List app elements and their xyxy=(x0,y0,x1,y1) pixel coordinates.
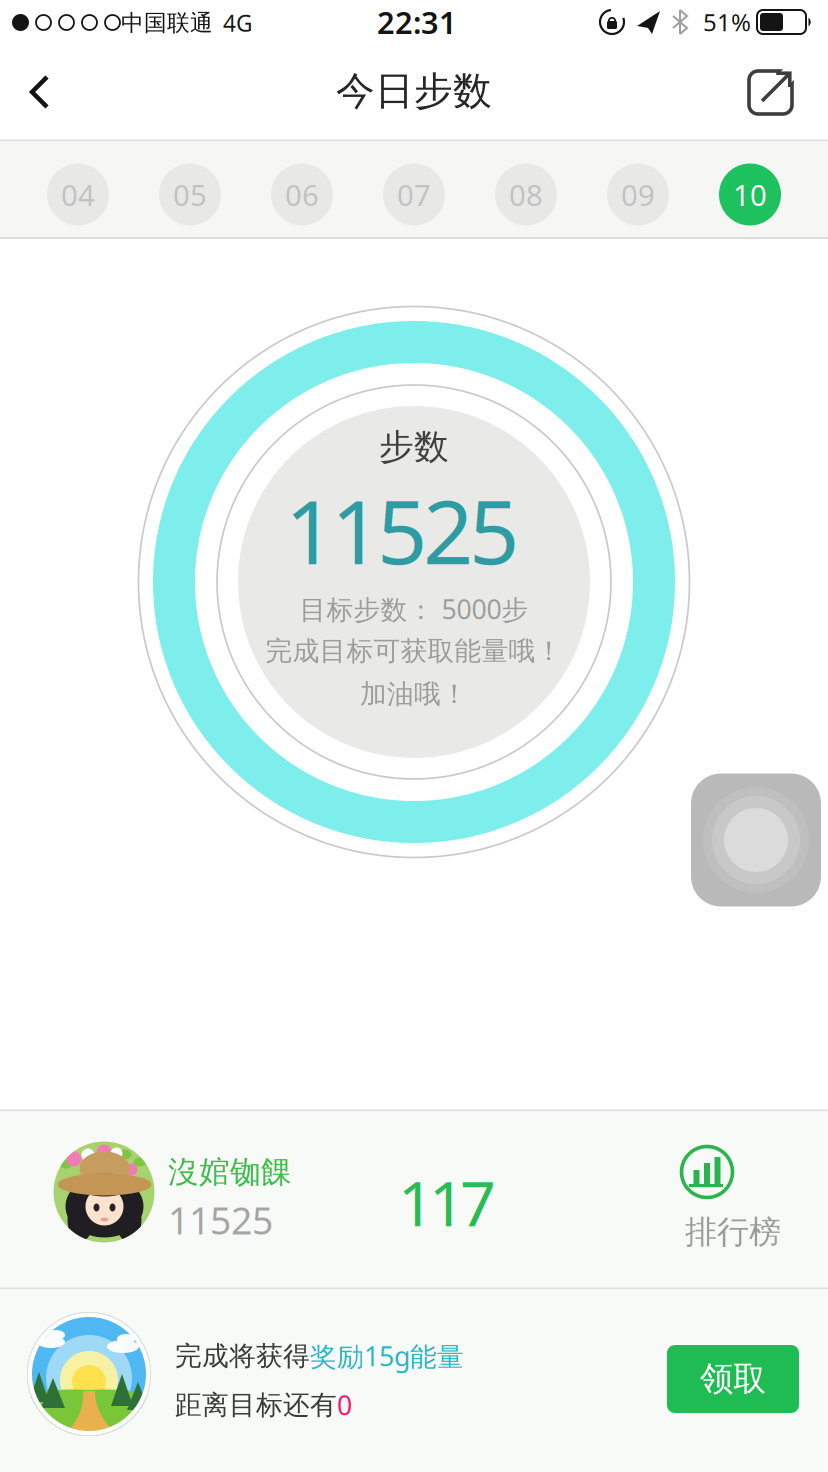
button[interactable]: 08 xyxy=(495,163,557,225)
staticText: 沒婠铷餜 xyxy=(168,1153,292,1191)
button[interactable]: Share xyxy=(741,63,799,121)
button[interactable]: AssistiveTouch xyxy=(691,773,821,906)
button[interactable]: 排行榜 xyxy=(673,1140,793,1252)
staticText: 领取 xyxy=(700,1358,766,1399)
staticText: 目标步数： 5000步 xyxy=(299,591,528,627)
button[interactable]: 04 xyxy=(47,163,109,225)
staticText: 0 xyxy=(337,1387,352,1423)
staticText: 排行榜 xyxy=(685,1212,781,1252)
button[interactable]: Back xyxy=(17,69,63,115)
staticText: 中国联通 xyxy=(121,9,213,37)
staticText: 11525 xyxy=(285,472,519,588)
staticText: 08 xyxy=(509,175,543,214)
staticText: 04 xyxy=(61,175,95,214)
staticText: 117 xyxy=(398,1160,496,1244)
button[interactable]: 10 xyxy=(719,163,781,225)
staticText: 距离目标还有 xyxy=(175,1389,337,1421)
staticText: 加油哦！ xyxy=(360,678,468,710)
staticText: 51% xyxy=(703,6,751,38)
button[interactable]: 领取 xyxy=(667,1345,799,1413)
button[interactable]: 09 xyxy=(607,163,669,225)
staticText: 4G xyxy=(223,8,253,38)
staticText: 09 xyxy=(621,175,655,214)
staticText: 06 xyxy=(285,175,319,214)
staticText: 05 xyxy=(173,175,207,214)
staticText: 完成将获得 xyxy=(175,1340,310,1372)
staticText: 07 xyxy=(397,175,431,214)
button[interactable]: 07 xyxy=(383,163,445,225)
staticText: 完成目标可获取能量哦！ xyxy=(265,635,562,667)
button[interactable]: 06 xyxy=(271,163,333,225)
button[interactable]: 05 xyxy=(159,163,221,225)
staticText: 22:31 xyxy=(377,2,457,42)
staticText: 10 xyxy=(733,175,767,214)
staticText: 今日步数 xyxy=(336,67,492,115)
staticText: 11525 xyxy=(168,1195,273,1245)
staticText: 步数 xyxy=(379,426,449,468)
staticText: 奖励15g能量 xyxy=(310,1338,464,1374)
